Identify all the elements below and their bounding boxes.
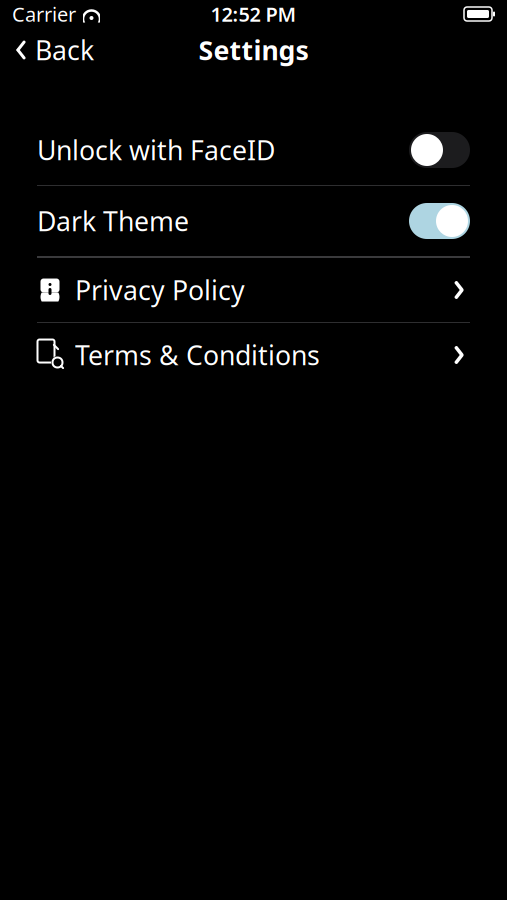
staticText: Unlock with FaceID bbox=[37, 132, 275, 168]
staticText: Dark Theme bbox=[37, 203, 189, 239]
staticText: Back bbox=[35, 32, 94, 68]
staticText: Carrier bbox=[12, 1, 76, 27]
staticText: Terms & Conditions bbox=[75, 337, 320, 373]
button[interactable]: Dark Theme bbox=[0, 186, 507, 256]
staticText: Privacy Policy bbox=[75, 272, 245, 308]
button[interactable]: Terms & Conditions bbox=[0, 323, 507, 387]
staticText: Settings bbox=[198, 32, 308, 68]
button[interactable]: Back bbox=[0, 24, 104, 76]
staticText: 12:52 PM bbox=[210, 1, 296, 27]
button[interactable]: Unlock with FaceID bbox=[0, 115, 507, 185]
button[interactable]: Privacy Policy bbox=[0, 258, 507, 322]
